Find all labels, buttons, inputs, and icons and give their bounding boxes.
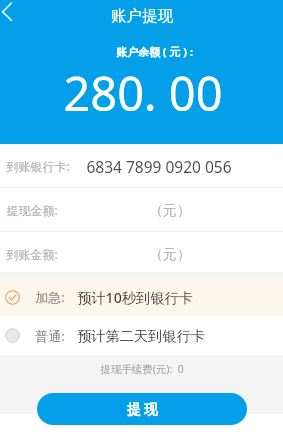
button[interactable]: 加急: (0, 278, 283, 316)
staticText: 到账金额: (6, 246, 58, 262)
button[interactable]: 到账金额: (0, 232, 283, 276)
staticText: 加急: (35, 288, 65, 306)
staticText: 6834 7899 0920 056 (86, 156, 232, 177)
staticText: （元） (149, 246, 191, 263)
staticText: 提 现 (127, 400, 158, 418)
button[interactable]: 提现金额: (0, 188, 283, 232)
button[interactable]: 提 现 (37, 393, 247, 425)
staticText: （元） (149, 202, 191, 219)
staticText: 280. 00 (63, 61, 223, 125)
staticText: 提现手续费(元): 0 (100, 362, 184, 376)
button[interactable]: 到账银行卡: (0, 144, 283, 188)
button[interactable]: Back (0, 0, 32, 32)
staticText: 到账银行卡: (6, 158, 70, 174)
button[interactable]: 普通: (0, 316, 283, 355)
staticText: 预计10秒到银行卡 (77, 288, 193, 307)
staticText: 账户余额 ( 元 ) : (116, 44, 193, 59)
staticText: 普通: (35, 327, 65, 345)
staticText: 账户提现 (111, 6, 173, 26)
staticText: 提现金额: (6, 202, 58, 218)
staticText: 预计第二天到银行卡 (77, 327, 205, 345)
